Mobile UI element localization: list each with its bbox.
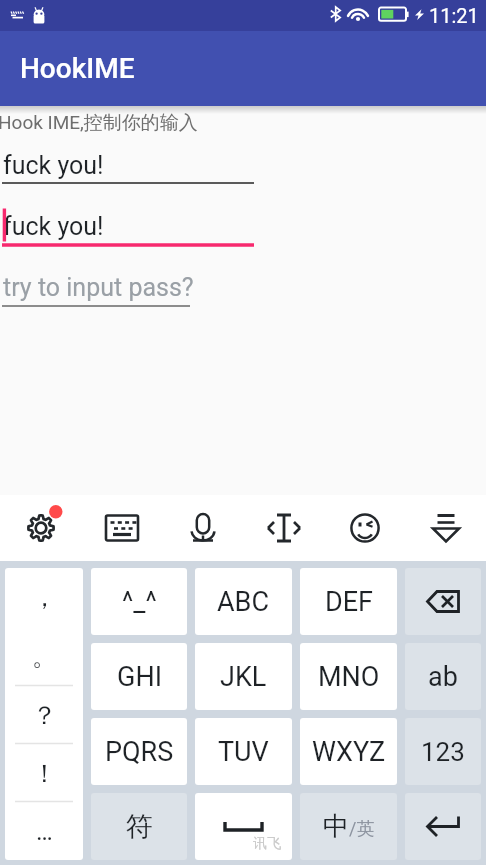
button[interactable]: WXYZ [300,718,397,785]
button[interactable]: Settings [0,495,81,561]
staticText: ab [428,661,458,693]
staticText: fuck you! [3,151,104,180]
button[interactable]: HookIME [0,31,486,106]
staticText: 中 [323,810,349,843]
button[interactable]: Voice input [162,495,243,561]
button[interactable]: ABC [195,568,292,635]
button[interactable]: JKL [195,643,292,710]
button[interactable]: ， [5,568,83,627]
staticText: … [36,817,53,846]
staticText: ！ [32,758,57,789]
button[interactable]: 。 [5,627,83,686]
button[interactable]: Emoji [324,495,405,561]
staticText: DEF [325,586,373,618]
button[interactable]: Hide keyboard [405,495,486,561]
staticText: JKL [220,661,267,693]
staticText: TUV [218,736,269,768]
button[interactable]: ！ [5,744,83,802]
button[interactable]: fuck you! [0,212,486,260]
staticText: 。 [32,641,57,672]
button[interactable]: DEF [300,568,397,635]
button[interactable]: TUV [195,718,292,785]
staticText: 123 [421,737,465,767]
button[interactable]: … [5,802,83,860]
button[interactable]: Enter [405,793,481,860]
button[interactable]: 123 [405,718,481,785]
staticText: try to input pass? [3,273,194,302]
button[interactable]: PQRS [91,718,187,785]
staticText: fuck you! [3,212,104,241]
staticText: ^_^ [122,586,157,618]
button[interactable]: ^_^ [91,568,187,635]
button[interactable]: 中 [300,793,397,860]
button[interactable]: MNO [300,643,397,710]
staticText: /英 [349,818,375,841]
staticText: 讯飞 [253,835,281,853]
staticText: ？ [32,700,57,731]
staticText: PQRS [105,736,174,768]
staticText: ， [32,582,57,613]
button[interactable]: try to input pass? [0,273,486,321]
staticText: ABC [217,586,270,618]
staticText: Hook IME,控制你的输入 [0,111,198,135]
staticText: 11:21 [429,4,479,27]
staticText: MNO [318,661,380,693]
button[interactable]: Move cursor [243,495,324,561]
button[interactable]: Backspace [405,568,481,635]
staticText: 符 [126,810,153,844]
button[interactable]: GHI [91,643,187,710]
staticText: HookIME [20,52,135,85]
button[interactable]: 讯飞 [195,793,292,860]
staticText: GHI [117,661,162,693]
button[interactable]: Switch keyboard layout [81,495,162,561]
button[interactable]: 符 [91,793,187,860]
button[interactable]: fuck you! [0,151,486,199]
button[interactable]: ？ [5,686,83,744]
staticText: WXYZ [312,736,386,768]
button[interactable]: ab [405,643,481,710]
